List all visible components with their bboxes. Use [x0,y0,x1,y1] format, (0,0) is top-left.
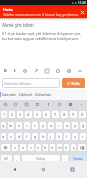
button[interactable]: . [62,155,68,162]
button[interactable]: Görüntü Ekleyin [2,78,60,88]
button[interactable]: j [48,133,54,140]
button[interactable]: Mic [43,100,54,109]
button[interactable]: !#1 [1,155,12,162]
button[interactable]: p [72,122,78,129]
staticText: Hata [3,7,13,12]
button[interactable]: ş [72,133,78,140]
button[interactable]: Translate [54,100,65,109]
button[interactable]: r [24,122,30,129]
button[interactable]: 2 [9,111,15,118]
staticText: Kullanılan [35,92,52,97]
button[interactable]: 0 [79,111,86,118]
button[interactable]: Tamam [70,155,86,162]
staticText: İskender [2,92,17,97]
button[interactable]: İskender [1,89,18,100]
staticText: 6 [45,112,48,117]
staticText: e [18,123,21,128]
button[interactable]: c [28,144,34,151]
button[interactable]: Emoji [52,66,63,75]
button[interactable]: b [43,144,48,151]
staticText: u [50,123,53,128]
button[interactable]: , [14,155,20,162]
button[interactable]: k [56,133,62,140]
button[interactable]: Home [29,161,58,178]
button[interactable]: Kapat [78,8,86,16]
button[interactable]: i [80,133,86,140]
staticText: z [14,145,16,150]
button[interactable]: Record [63,66,74,75]
button[interactable]: o [64,122,70,129]
button[interactable]: u [48,122,54,129]
staticText: 7 [54,112,57,117]
button[interactable]: Emoji [0,100,10,109]
staticText: b [44,145,47,150]
button[interactable]: q [1,122,6,129]
button[interactable]: 6 [43,111,50,118]
staticText: Edilecek [19,92,33,97]
button[interactable]: ç [71,144,76,151]
button[interactable]: Clipboard [32,100,43,109]
staticText: . [64,156,66,161]
button[interactable]: 5 [34,111,41,118]
button[interactable]: 7 [52,111,59,118]
button[interactable]: Sticker [10,100,21,109]
staticText: d [18,134,21,139]
button[interactable]: ö [64,144,69,151]
staticText: c [30,145,32,150]
button[interactable]: Image [41,66,52,75]
staticText: Alınık yht bileti [2,22,34,28]
button[interactable]: t [32,122,38,129]
staticText: 3 [19,112,22,117]
button[interactable]: n [50,144,55,151]
button[interactable]: GIF [21,100,32,109]
staticText: i [82,134,84,139]
button[interactable]: Back [0,161,29,178]
button[interactable]: ı [56,122,62,129]
staticText: n [51,145,54,150]
button[interactable]: v [36,144,41,151]
button[interactable]: f [24,133,30,140]
button[interactable]: Bold [0,66,10,75]
button[interactable]: h [40,133,46,140]
button[interactable]: Edilecek [18,89,34,100]
staticText: , [16,156,18,161]
button[interactable]: Türkçe [22,155,60,162]
button[interactable]: e [16,122,22,129]
button[interactable]: m [57,144,62,151]
staticText: o [66,123,69,128]
button[interactable]: d [16,133,22,140]
button[interactable]: More [74,66,85,75]
button[interactable]: More [76,100,87,109]
staticText: g [34,134,37,139]
button[interactable]: x [20,144,26,151]
button[interactable]: g [32,133,38,140]
staticText: w [9,123,13,128]
staticText: 2 [11,112,14,117]
staticText: r [26,123,28,128]
button[interactable]: y [40,122,46,129]
button[interactable]: Recents [58,161,87,178]
button[interactable]: Backspace [78,144,86,151]
staticText: a [2,134,5,139]
button[interactable]: Attach [30,66,41,75]
button[interactable]: Yolla [62,78,85,88]
button[interactable]: Underline [20,66,30,75]
button[interactable]: 8 [61,111,68,118]
button[interactable]: Kullanılan [34,89,53,100]
staticText: ö [65,145,68,150]
staticText: 9 [72,112,75,117]
button[interactable]: Shift [1,144,10,151]
button[interactable]: ğ [80,122,86,129]
button[interactable]: z [12,144,18,151]
button[interactable]: s [8,133,14,140]
button[interactable]: Settings [65,100,76,109]
button[interactable]: Italic [10,66,20,75]
button[interactable]: a [1,133,6,140]
button[interactable]: w [8,122,14,129]
button[interactable]: 4 [25,111,32,118]
button[interactable]: l [64,133,70,140]
button[interactable]: 1 [1,111,7,118]
button[interactable]: 9 [70,111,77,118]
button[interactable]: 3 [17,111,23,118]
staticText: l [66,134,68,139]
